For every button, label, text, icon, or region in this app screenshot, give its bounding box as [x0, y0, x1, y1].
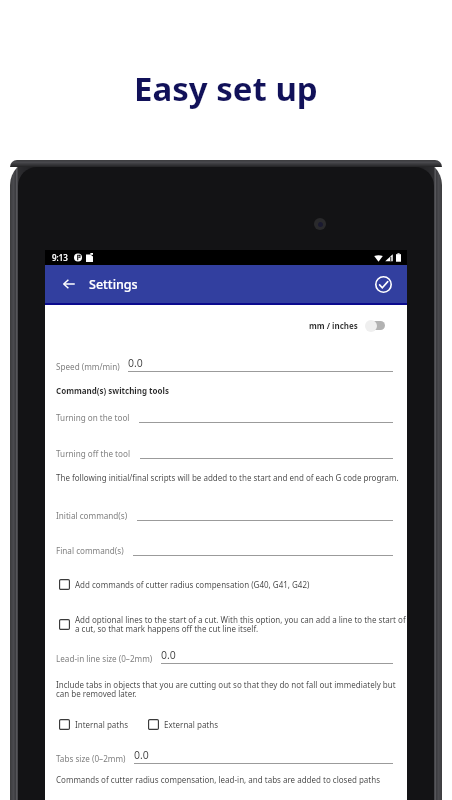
- button[interactable]: Back: [50, 265, 88, 303]
- staticText: Turning off the tool: [56, 448, 131, 459]
- staticText: External paths: [164, 719, 219, 730]
- staticText: Command(s) switching tools: [56, 385, 169, 396]
- staticText: 9:13: [52, 252, 68, 263]
- button[interactable]: Turning on the tool: [56, 412, 393, 423]
- staticText: Initial command(s): [56, 510, 128, 521]
- staticText: Tabs size (0–2mm): [56, 753, 126, 764]
- button[interactable]: Final command(s): [56, 545, 393, 556]
- staticText: Settings: [89, 276, 138, 293]
- staticText: 0.0: [134, 748, 149, 762]
- staticText: Speed (mm/min): [56, 361, 120, 372]
- button[interactable]: Done: [364, 265, 402, 303]
- button[interactable]: Turning off the tool: [56, 448, 393, 459]
- button[interactable]: External paths: [148, 719, 219, 730]
- button[interactable]: Lead-in line size (0–2mm): [56, 649, 393, 664]
- button[interactable]: Speed (mm/min): [56, 357, 393, 372]
- staticText: Internal paths: [75, 719, 129, 730]
- staticText: The following initial/final scripts will…: [56, 472, 399, 483]
- staticText: 0.0: [161, 648, 176, 662]
- staticText: Lead-in line size (0–2mm): [56, 653, 153, 664]
- staticText: 0.0: [128, 356, 143, 370]
- button[interactable]: Add optional lines to the start of a cut…: [56, 614, 407, 635]
- staticText: mm / inches: [309, 320, 358, 331]
- button[interactable]: Initial command(s): [56, 510, 393, 521]
- staticText: Final command(s): [56, 545, 124, 556]
- staticText: Include tabs in objects that you are cut…: [56, 679, 407, 700]
- button[interactable]: Tabs size (0–2mm): [56, 749, 393, 764]
- button[interactable]: Internal paths: [56, 719, 129, 730]
- button[interactable]: Add commands of cutter radius compensati…: [56, 579, 407, 590]
- staticText: Easy set up: [134, 66, 318, 111]
- staticText: Commands of cutter radius compensation, …: [56, 774, 380, 785]
- staticText: Turning on the tool: [56, 412, 130, 423]
- staticText: Add commands of cutter radius compensati…: [75, 579, 310, 590]
- staticText: Add optional lines to the start of a cut…: [75, 614, 407, 635]
- button[interactable]: mm / inches: [309, 319, 385, 332]
